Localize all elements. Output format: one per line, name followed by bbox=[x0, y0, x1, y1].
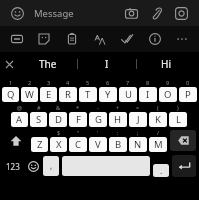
staticText: 123 bbox=[6, 161, 20, 172]
button[interactable]: Emoji bbox=[24, 153, 42, 179]
button[interactable]: : bbox=[109, 129, 127, 152]
button[interactable]: ' bbox=[89, 129, 107, 152]
staticText: V bbox=[95, 138, 101, 151]
button[interactable]: Attach bbox=[145, 2, 167, 24]
staticText: F bbox=[76, 113, 81, 126]
staticText: ( bbox=[157, 104, 159, 111]
staticText: 3 bbox=[47, 79, 51, 86]
staticText: X bbox=[56, 138, 62, 151]
button[interactable]: Backspace bbox=[170, 130, 196, 151]
button[interactable]: 8 bbox=[139, 79, 157, 102]
staticText: 4 bbox=[66, 79, 70, 86]
button[interactable]: GIF bbox=[6, 28, 28, 50]
staticText: @ bbox=[17, 104, 22, 111]
button[interactable]: 4 bbox=[59, 79, 77, 102]
staticText: 9 bbox=[166, 79, 170, 86]
button[interactable]: Translate bbox=[89, 28, 111, 50]
button[interactable]: 6 bbox=[99, 79, 117, 102]
staticText: T bbox=[85, 88, 91, 101]
button[interactable]: Close suggestions bbox=[0, 52, 18, 76]
button[interactable]: Done bbox=[116, 28, 138, 50]
staticText: R bbox=[65, 88, 71, 101]
staticText: S bbox=[36, 113, 42, 126]
button[interactable]: I bbox=[78, 52, 136, 76]
button[interactable]: # bbox=[30, 104, 47, 127]
staticText: A bbox=[16, 113, 23, 126]
staticText: 5 bbox=[86, 79, 90, 86]
staticText: M bbox=[154, 138, 163, 151]
button[interactable]: ,!? bbox=[153, 155, 169, 177]
button[interactable]: 7 bbox=[119, 79, 137, 102]
button[interactable]: 5 bbox=[79, 79, 97, 102]
button[interactable]: Gallery bbox=[170, 2, 192, 24]
button[interactable]: The bbox=[18, 52, 77, 76]
staticText: 2 bbox=[28, 79, 32, 86]
button[interactable]: 2 bbox=[21, 79, 38, 102]
staticText: # bbox=[37, 104, 41, 111]
staticText: J bbox=[137, 113, 140, 126]
button[interactable]: 123 bbox=[1, 153, 24, 179]
staticText: Y bbox=[105, 88, 111, 101]
button[interactable]: Camera bbox=[120, 2, 142, 24]
button[interactable]: Enter bbox=[172, 155, 196, 177]
staticText: & bbox=[56, 104, 61, 111]
staticText: B bbox=[115, 138, 122, 151]
button[interactable]: & bbox=[49, 104, 67, 127]
button[interactable]: ( bbox=[149, 104, 167, 127]
staticText: , bbox=[50, 160, 53, 172]
staticText: I bbox=[146, 88, 150, 101]
staticText: 7 bbox=[126, 79, 130, 86]
staticText: * bbox=[76, 104, 80, 111]
button[interactable]: 1 bbox=[2, 79, 19, 102]
staticText: The bbox=[39, 57, 57, 71]
staticText: H bbox=[114, 113, 122, 126]
button[interactable]: * bbox=[69, 104, 87, 127]
staticText: E bbox=[46, 88, 52, 101]
staticText: Z bbox=[37, 138, 43, 151]
staticText: Q bbox=[7, 88, 15, 101]
staticText: 6 bbox=[106, 79, 110, 86]
button[interactable]: 3 bbox=[40, 79, 57, 102]
staticText: . bbox=[160, 165, 163, 177]
button[interactable]: More bbox=[171, 28, 193, 50]
button[interactable]: Hi bbox=[137, 52, 195, 76]
button[interactable]: @ bbox=[11, 104, 28, 127]
button[interactable]: Clipboard bbox=[61, 28, 83, 50]
button[interactable]: 9 bbox=[159, 79, 177, 102]
staticText: 1 bbox=[9, 79, 13, 86]
staticText: L bbox=[176, 113, 181, 126]
staticText: ' bbox=[97, 129, 99, 136]
staticText: " bbox=[77, 129, 80, 136]
button[interactable]: Z bbox=[31, 129, 48, 152]
button[interactable]: ) bbox=[169, 104, 187, 127]
button[interactable]: + bbox=[109, 104, 127, 127]
button[interactable]: " bbox=[69, 129, 87, 152]
staticText: = bbox=[136, 104, 140, 111]
button[interactable]: Stickers bbox=[33, 28, 55, 50]
staticText: K bbox=[155, 113, 161, 126]
staticText: O bbox=[164, 88, 172, 101]
staticText: C bbox=[75, 138, 82, 151]
button[interactable]: = bbox=[129, 104, 147, 127]
staticText: N bbox=[134, 138, 142, 151]
staticText: 0 bbox=[186, 79, 190, 86]
staticText: ; bbox=[137, 129, 139, 136]
button[interactable]: Emoji bbox=[7, 3, 27, 23]
staticText: ) bbox=[177, 104, 179, 111]
staticText: G bbox=[95, 113, 102, 126]
button[interactable]: Info bbox=[144, 28, 166, 50]
button[interactable]: , bbox=[43, 156, 59, 176]
staticText: ,!? bbox=[159, 163, 164, 170]
staticText: $ bbox=[57, 129, 61, 136]
staticText: / bbox=[157, 129, 160, 136]
button[interactable]: ; bbox=[129, 129, 147, 152]
staticText: D bbox=[55, 113, 62, 126]
button[interactable]: Shift bbox=[1, 128, 30, 153]
button[interactable]: - bbox=[89, 104, 107, 127]
staticText: 8 bbox=[146, 79, 150, 86]
button[interactable]: 0 bbox=[179, 79, 197, 102]
button[interactable]: Space bbox=[62, 156, 150, 176]
staticText: - bbox=[97, 104, 99, 111]
button[interactable]: / bbox=[149, 129, 167, 152]
button[interactable]: $ bbox=[50, 129, 67, 152]
